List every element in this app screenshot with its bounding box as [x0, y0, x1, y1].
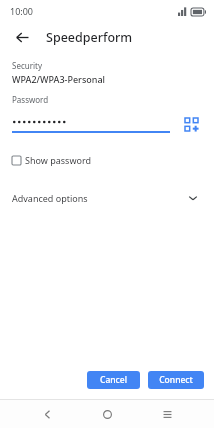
button[interactable]: Scan QR code: [180, 113, 202, 135]
staticText: Security: [12, 60, 43, 71]
button[interactable]: Back: [34, 401, 60, 427]
staticText: Connect: [159, 374, 193, 386]
button[interactable]: Cancel: [87, 371, 140, 389]
staticText: WPA2/WPA3-Personal: [12, 73, 106, 85]
staticText: Show password: [25, 154, 91, 166]
button[interactable]: Back: [12, 27, 32, 47]
button[interactable]: Show password: [12, 154, 202, 166]
button[interactable]: Recent apps: [154, 401, 180, 427]
staticText: Advanced options: [12, 192, 184, 204]
button[interactable]: Advanced options: [12, 187, 202, 209]
staticText: Speedperform: [46, 29, 133, 46]
button[interactable]: Connect: [148, 371, 204, 389]
staticText: Password: [12, 94, 49, 105]
button[interactable]: [12, 115, 170, 133]
staticText: Cancel: [100, 374, 127, 386]
staticText: 10:00: [10, 5, 34, 17]
button[interactable]: Home: [94, 401, 120, 427]
